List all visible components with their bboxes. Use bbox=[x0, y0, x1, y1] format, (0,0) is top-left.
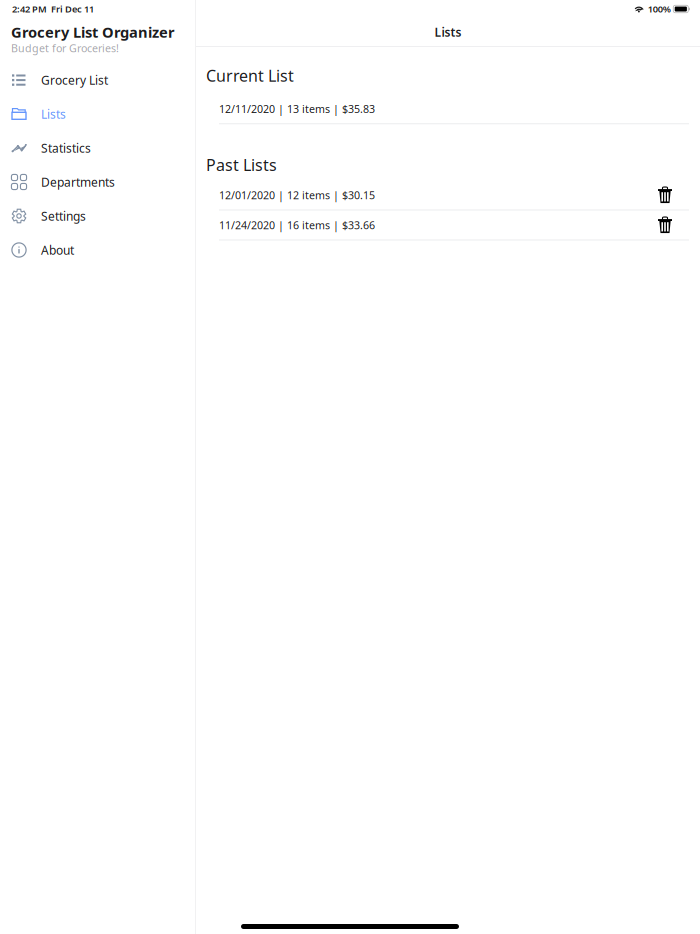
staticText: 100% bbox=[648, 3, 671, 15]
staticText: 12/11/2020 | 13 items | $35.83 bbox=[219, 102, 375, 116]
staticText: Settings bbox=[41, 208, 86, 224]
button[interactable]: 12/01/2020 | 12 items | $30.15 bbox=[196, 180, 648, 209]
staticText: Lists bbox=[41, 106, 66, 122]
button[interactable]: Departments bbox=[0, 165, 195, 199]
button[interactable]: Delete list bbox=[648, 210, 682, 239]
button[interactable]: Delete list bbox=[648, 180, 682, 209]
button[interactable]: Settings bbox=[0, 199, 195, 233]
staticText: Current List bbox=[206, 65, 294, 86]
staticText: Budget for Groceries! bbox=[11, 41, 119, 55]
staticText: 2:42 PM bbox=[12, 3, 47, 15]
staticText: Grocery List Organizer bbox=[11, 22, 175, 42]
staticText: 12/01/2020 | 12 items | $30.15 bbox=[219, 188, 375, 202]
staticText: Statistics bbox=[41, 140, 91, 156]
button[interactable]: Statistics bbox=[0, 131, 195, 165]
staticText: About bbox=[41, 242, 74, 258]
staticText: Fri Dec 11 bbox=[51, 3, 94, 15]
staticText: Grocery List bbox=[41, 72, 108, 88]
staticText: Departments bbox=[41, 174, 115, 190]
button[interactable]: 11/24/2020 | 16 items | $33.66 bbox=[196, 210, 648, 239]
staticText: 11/24/2020 | 16 items | $33.66 bbox=[219, 218, 375, 232]
staticText: Lists bbox=[434, 24, 461, 40]
button[interactable]: 12/11/2020 | 13 items | $35.83 bbox=[196, 94, 700, 123]
button[interactable]: Lists bbox=[0, 97, 195, 131]
button[interactable]: Grocery List bbox=[0, 63, 195, 97]
staticText: Past Lists bbox=[206, 154, 277, 175]
button[interactable]: About bbox=[0, 233, 195, 267]
